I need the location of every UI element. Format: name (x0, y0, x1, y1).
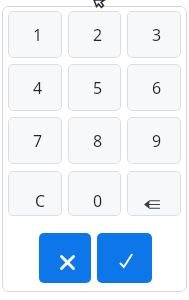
button[interactable]: 8 (68, 117, 121, 164)
staticText: 7 (33, 130, 43, 152)
staticText: 0 (93, 190, 103, 212)
button[interactable] (127, 171, 181, 216)
button[interactable]: 3 (127, 11, 181, 58)
button[interactable]: 5 (68, 64, 121, 111)
button[interactable]: 0 (68, 171, 121, 216)
button[interactable]: 2 (68, 11, 121, 58)
button[interactable] (97, 233, 152, 283)
button[interactable]: 1 (8, 11, 62, 58)
staticText: 5 (93, 77, 103, 99)
button[interactable]: 9 (127, 117, 181, 164)
staticText: 9 (152, 130, 162, 152)
staticText: 2 (93, 24, 103, 46)
staticText: 1 (33, 24, 43, 46)
button[interactable]: 7 (8, 117, 62, 164)
button[interactable]: 4 (8, 64, 62, 111)
staticText: C (35, 190, 46, 212)
button[interactable]: 6 (127, 64, 181, 111)
staticText: 8 (93, 130, 103, 152)
staticText: 3 (152, 24, 162, 46)
staticText: 6 (152, 77, 162, 99)
button[interactable] (39, 233, 91, 283)
staticText: 4 (33, 77, 43, 99)
button[interactable]: C (8, 171, 62, 216)
